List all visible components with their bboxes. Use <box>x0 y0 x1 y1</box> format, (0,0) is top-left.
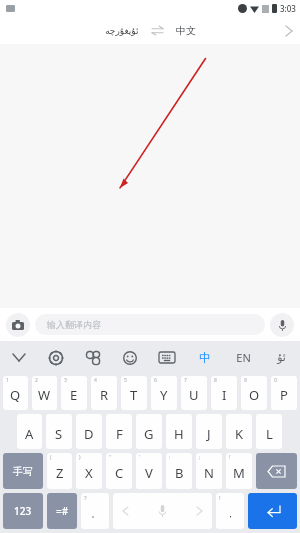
staticText: Y <box>160 386 168 404</box>
staticText: 6 <box>154 377 157 384</box>
staticText: O <box>249 386 260 404</box>
button[interactable]: Enter <box>248 493 297 529</box>
button[interactable]: Clipboard <box>74 341 111 374</box>
button[interactable]: Space <box>113 493 212 529</box>
button[interactable]: 0 <box>271 376 297 410</box>
staticText: X <box>85 464 93 482</box>
button[interactable]: Collapse keyboard <box>0 341 37 374</box>
button[interactable]: 5 <box>121 376 147 410</box>
staticText: " <box>109 454 112 461</box>
staticText: Q <box>10 386 21 404</box>
staticText: 7 <box>184 377 187 384</box>
button[interactable]: A <box>17 414 42 449</box>
staticText: D <box>84 425 94 443</box>
button[interactable]: ; <box>196 453 222 489</box>
staticText: T <box>130 386 138 404</box>
button[interactable]: Settings <box>37 341 74 374</box>
button[interactable]: L <box>256 414 282 449</box>
staticText: : <box>169 454 171 461</box>
staticText: ئۇيغۇرچە <box>105 26 139 36</box>
button[interactable]: ' <box>136 453 162 489</box>
staticText: 3 <box>64 377 67 384</box>
button[interactable]: ) <box>76 453 102 489</box>
staticText: ( <box>50 454 52 461</box>
staticText: 手写 <box>13 465 33 478</box>
button[interactable]: J <box>196 414 222 449</box>
button[interactable]: H <box>166 414 192 449</box>
staticText: U <box>189 386 199 404</box>
staticText: 1 <box>6 377 9 384</box>
button[interactable]: S <box>46 414 72 449</box>
staticText: 4 <box>94 377 97 384</box>
staticText: ; <box>199 454 201 461</box>
staticText: A <box>25 425 34 443</box>
staticText: 8 <box>214 377 217 384</box>
button[interactable]: 123 <box>3 493 43 529</box>
button[interactable]: 6 <box>151 376 177 410</box>
staticText: 中文 <box>176 24 196 37</box>
button[interactable]: More <box>286 26 300 36</box>
staticText: Z <box>56 464 64 482</box>
button[interactable]: D <box>76 414 102 449</box>
staticText: ) <box>79 454 81 461</box>
button[interactable]: =# <box>47 493 77 529</box>
staticText: EN <box>236 350 251 365</box>
staticText: C <box>115 464 124 482</box>
button[interactable]: Swap languages <box>145 22 170 39</box>
button[interactable]: ! <box>226 453 252 489</box>
staticText: K <box>235 425 244 443</box>
staticText: B <box>175 464 184 482</box>
staticText: =# <box>56 504 69 518</box>
button[interactable]: Emoji <box>111 341 148 374</box>
button[interactable]: ئۇيغۇرچە <box>99 23 145 39</box>
staticText: 。 <box>91 508 100 519</box>
staticText: F <box>116 425 123 443</box>
staticText: S <box>55 425 63 443</box>
button[interactable]: Camera <box>6 313 30 337</box>
staticText: ! <box>219 494 221 502</box>
staticText: 0 <box>274 377 277 384</box>
button[interactable]: 7 <box>181 376 207 410</box>
staticText: E <box>70 386 78 404</box>
button[interactable]: " <box>106 453 132 489</box>
staticText: ， <box>226 508 235 519</box>
button[interactable]: 8 <box>211 376 237 410</box>
staticText: W <box>38 386 51 404</box>
button[interactable]: ! <box>216 493 244 529</box>
button[interactable]: 手写 <box>3 453 43 489</box>
staticText: J <box>207 425 211 443</box>
staticText: ' <box>139 454 141 461</box>
button[interactable]: F <box>106 414 132 449</box>
staticText: P <box>280 386 288 404</box>
button[interactable]: EN <box>224 341 262 374</box>
staticText: ! <box>229 454 231 461</box>
button[interactable]: ئۇ <box>262 341 300 374</box>
button[interactable]: Keyboard layout <box>148 341 186 374</box>
staticText: I <box>222 386 227 404</box>
staticText: M <box>233 464 245 482</box>
button[interactable]: 中 <box>186 341 224 374</box>
staticText: ئۇ <box>277 351 286 364</box>
staticText: R <box>100 386 109 404</box>
button[interactable]: Backspace <box>256 453 297 489</box>
button[interactable]: K <box>226 414 252 449</box>
staticText: H <box>174 425 184 443</box>
staticText: 2 <box>35 377 38 384</box>
staticText: 中 <box>199 350 211 365</box>
staticText: L <box>266 425 273 443</box>
button[interactable]: 1 <box>3 376 28 410</box>
staticText: V <box>145 464 153 482</box>
button[interactable]: 3 <box>61 376 87 410</box>
button[interactable]: 输入翻译内容 <box>35 314 265 335</box>
button[interactable]: ? <box>81 493 109 529</box>
button[interactable]: Voice input <box>270 313 294 337</box>
button[interactable]: 4 <box>91 376 117 410</box>
button[interactable]: G <box>136 414 162 449</box>
staticText: ? <box>84 494 87 502</box>
button[interactable]: 中文 <box>170 21 202 40</box>
button[interactable]: ( <box>47 453 72 489</box>
button[interactable]: 2 <box>32 376 57 410</box>
staticText: 9 <box>244 377 247 384</box>
button[interactable]: : <box>166 453 192 489</box>
button[interactable]: 9 <box>241 376 267 410</box>
